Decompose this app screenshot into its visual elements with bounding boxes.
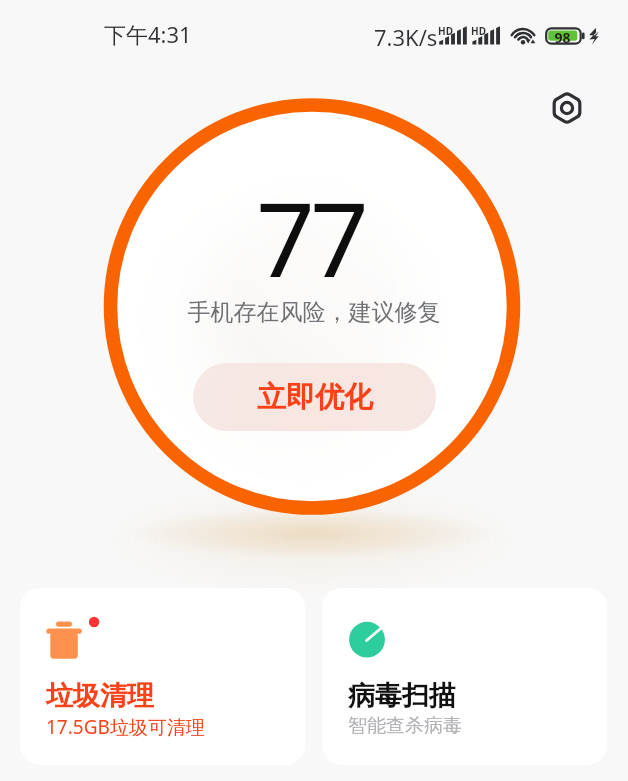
staticText: HD: [438, 24, 453, 38]
staticText: 98: [548, 28, 577, 47]
staticText: 17.5GB垃圾可清理: [46, 714, 205, 740]
button[interactable]: Settings: [543, 84, 590, 131]
staticText: 垃圾清理: [46, 679, 154, 713]
staticText: 7.3K/s: [374, 22, 438, 52]
button[interactable]: 立即优化: [193, 363, 436, 431]
staticText: HD: [471, 24, 486, 38]
staticText: 手机存在风险，建议修复: [0, 298, 628, 327]
staticText: 智能查杀病毒: [348, 714, 462, 738]
button[interactable]: 垃圾清理: [20, 588, 305, 765]
staticText: 病毒扫描: [348, 679, 456, 713]
staticText: 下午4:31: [104, 19, 192, 49]
staticText: 77: [0, 167, 624, 307]
staticText: 立即优化: [257, 379, 373, 416]
button[interactable]: 病毒扫描: [322, 588, 607, 765]
